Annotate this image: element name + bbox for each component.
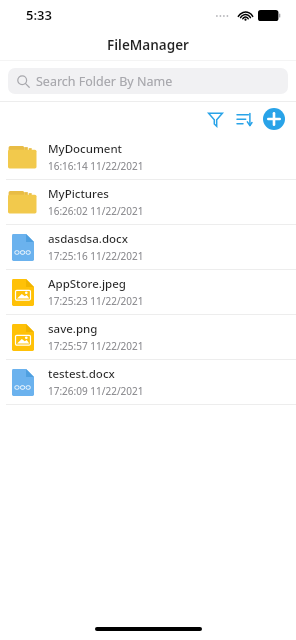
button[interactable]: Sort <box>231 106 257 132</box>
button[interactable]: Search Folder By Name <box>8 68 288 94</box>
staticText: 16:16:14 11/22/2021 <box>48 159 144 173</box>
button[interactable]: AppStore.jpeg <box>0 270 296 314</box>
button[interactable]: save.png <box>0 315 296 359</box>
button[interactable]: testest.docx <box>0 360 296 404</box>
staticText: 17:25:57 11/22/2021 <box>48 339 144 353</box>
staticText: testest.docx <box>48 366 115 382</box>
staticText: 17:25:16 11/22/2021 <box>48 249 144 263</box>
staticText: MyDocument <box>48 141 123 157</box>
staticText: Search Folder By Name <box>36 73 173 90</box>
staticText: AppStore.jpeg <box>48 276 126 292</box>
staticText: 17:26:09 11/22/2021 <box>48 384 144 398</box>
staticText: save.png <box>48 321 98 337</box>
staticText: FileManager <box>107 36 189 54</box>
button[interactable]: MyPictures <box>0 180 296 224</box>
button[interactable]: Filter <box>202 106 228 132</box>
staticText: asdasdsa.docx <box>48 231 128 247</box>
staticText: 17:25:23 11/22/2021 <box>48 294 144 308</box>
staticText: 5:33 <box>26 6 52 24</box>
staticText: 16:26:02 11/22/2021 <box>48 204 144 218</box>
button[interactable]: asdasdsa.docx <box>0 225 296 269</box>
staticText: MyPictures <box>48 186 109 202</box>
button[interactable]: Add <box>260 105 288 133</box>
button[interactable]: MyDocument <box>0 135 296 179</box>
